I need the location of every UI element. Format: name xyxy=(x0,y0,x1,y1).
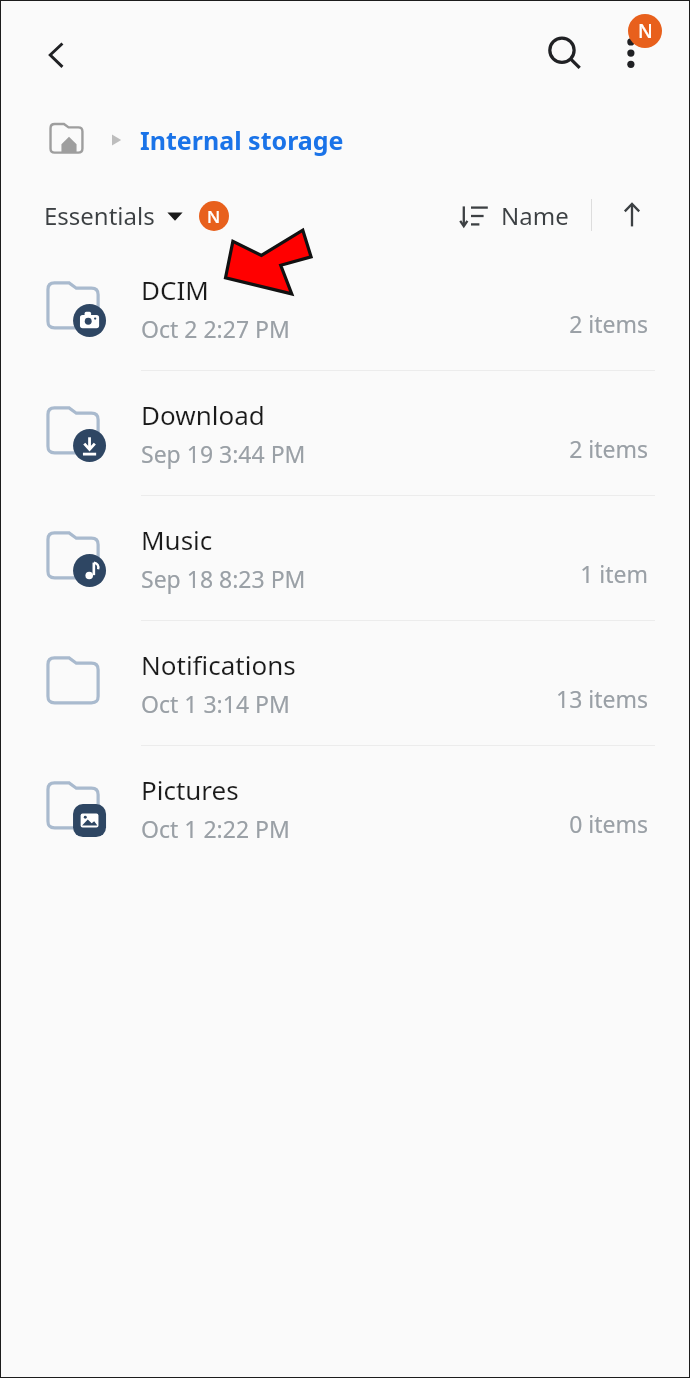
button[interactable]: DCIM xyxy=(0,246,690,370)
button[interactable]: Search xyxy=(535,24,595,84)
button[interactable]: Name xyxy=(459,199,569,232)
staticText: 2 items xyxy=(569,308,648,339)
staticText: Notifications xyxy=(141,647,296,682)
staticText: Essentials xyxy=(44,199,155,232)
staticText: N xyxy=(638,18,653,44)
staticText: 1 item xyxy=(580,558,648,589)
button[interactable]: More options xyxy=(604,24,660,80)
button[interactable]: Back xyxy=(28,26,86,84)
staticText: N xyxy=(207,205,221,228)
button[interactable]: Internal storage xyxy=(140,123,344,157)
button[interactable]: Essentials xyxy=(44,199,229,232)
staticText: Internal storage xyxy=(140,123,344,157)
staticText: Pictures xyxy=(141,772,239,807)
staticText: Name xyxy=(501,199,569,232)
staticText: Download xyxy=(141,397,265,432)
staticText: DCIM xyxy=(141,272,209,307)
button[interactable]: Pictures xyxy=(0,746,690,870)
staticText: Oct 2 2:27 PM xyxy=(141,313,290,344)
button[interactable]: Sort ascending xyxy=(610,193,654,237)
staticText: Oct 1 3:14 PM xyxy=(141,688,290,719)
button[interactable]: Music xyxy=(0,496,690,620)
staticText: Music xyxy=(141,522,213,557)
staticText: 0 items xyxy=(569,808,648,839)
button[interactable]: Download xyxy=(0,371,690,495)
button[interactable]: Notifications xyxy=(0,621,690,745)
staticText: 13 items xyxy=(555,683,648,714)
button[interactable]: Home storage xyxy=(46,117,92,163)
staticText: 2 items xyxy=(569,433,648,464)
staticText: Sep 18 8:23 PM xyxy=(141,563,306,594)
staticText: Sep 19 3:44 PM xyxy=(141,438,306,469)
staticText: Oct 1 2:22 PM xyxy=(141,813,290,844)
